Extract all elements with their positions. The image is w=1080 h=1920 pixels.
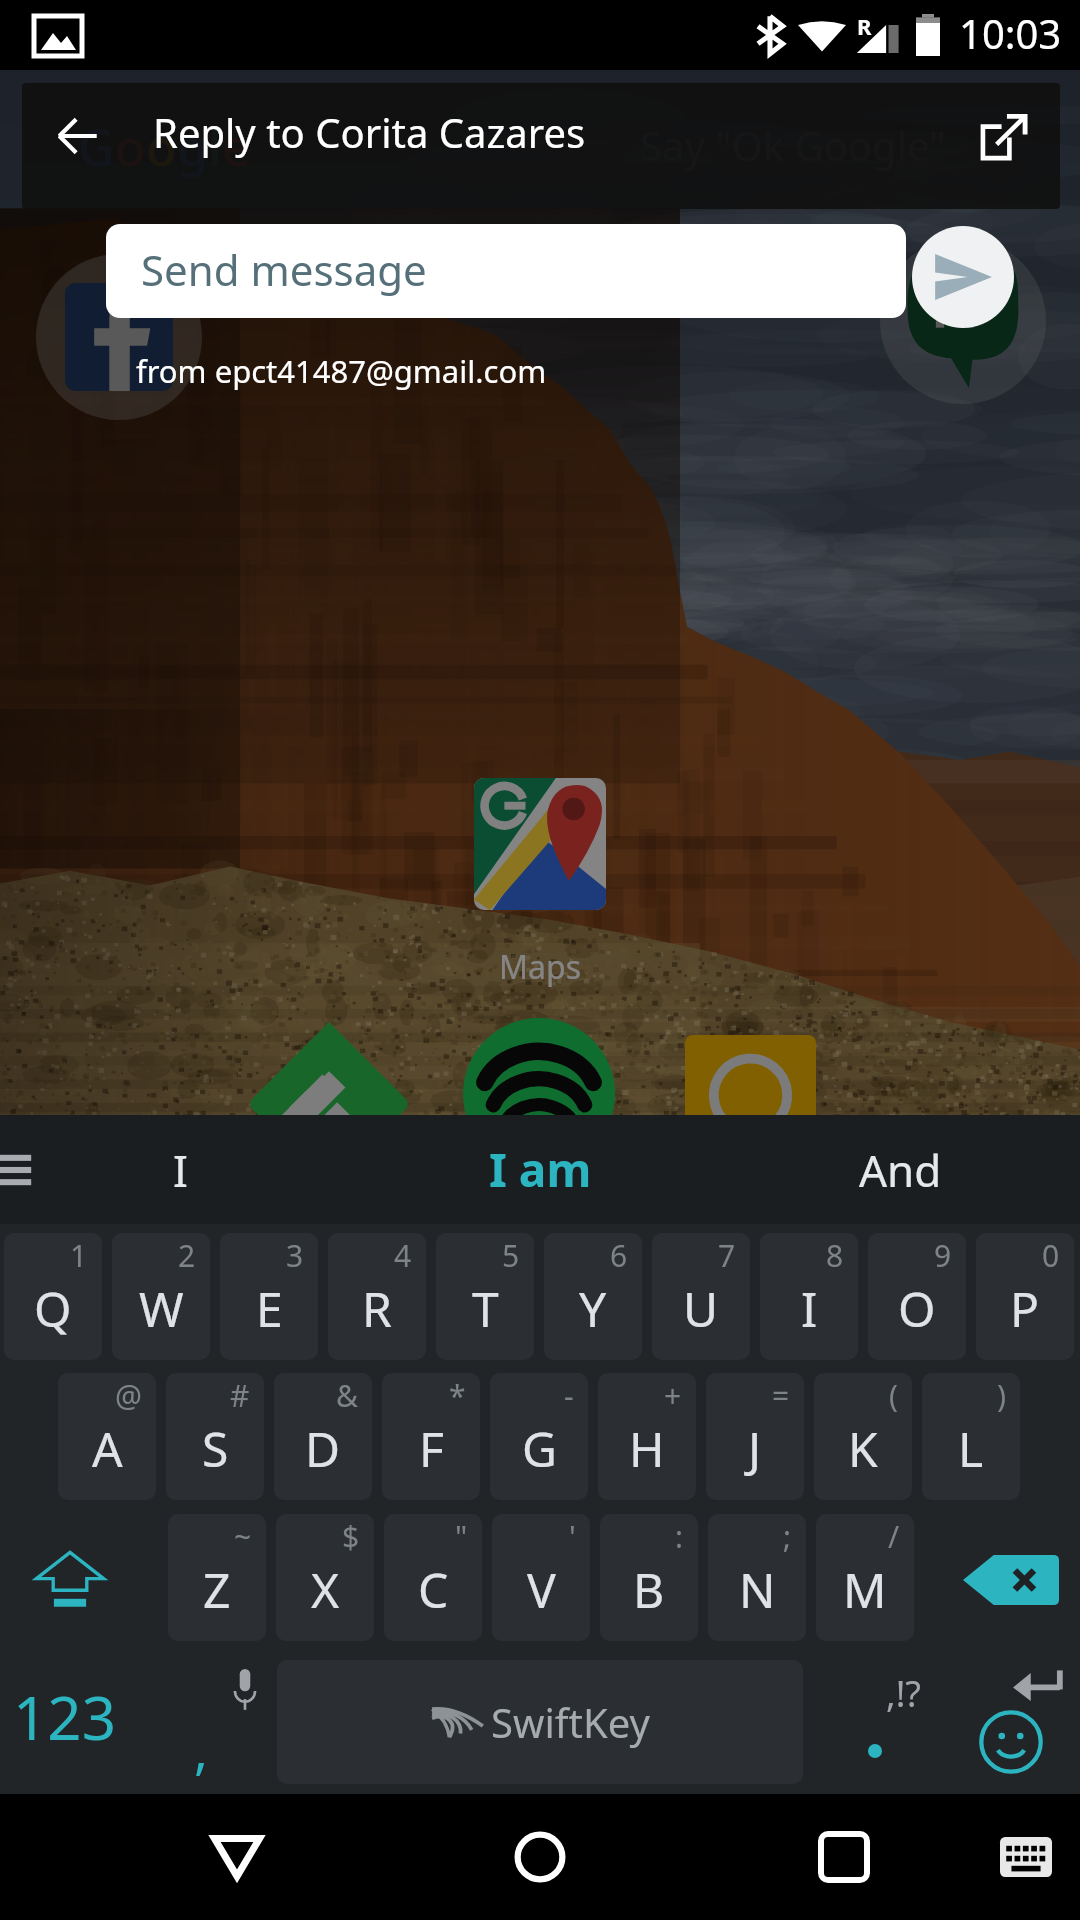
button[interactable]: Feedly bbox=[247, 1022, 411, 1186]
staticText: I bbox=[173, 1140, 188, 1200]
staticText: L bbox=[958, 1416, 984, 1481]
staticText: F bbox=[419, 1416, 444, 1481]
staticText: l bbox=[208, 113, 222, 181]
staticText: And bbox=[859, 1140, 942, 1200]
button[interactable]: 7 bbox=[652, 1233, 750, 1360]
button[interactable]: " bbox=[384, 1514, 482, 1641]
button[interactable]: Send message bbox=[106, 224, 906, 318]
staticText: # bbox=[230, 1375, 250, 1416]
staticText: E bbox=[256, 1276, 283, 1341]
staticText: 3 bbox=[286, 1235, 304, 1276]
staticText: W bbox=[139, 1276, 184, 1341]
staticText: * bbox=[449, 1375, 466, 1416]
button[interactable]: ) bbox=[922, 1373, 1020, 1500]
staticText: P bbox=[1010, 1276, 1040, 1341]
staticText: + bbox=[664, 1375, 682, 1416]
button[interactable]: ( bbox=[814, 1373, 912, 1500]
button[interactable]: ; bbox=[708, 1514, 806, 1641]
button[interactable]: = bbox=[706, 1373, 804, 1500]
staticText: ( bbox=[889, 1375, 898, 1416]
button[interactable]: Keep bbox=[685, 1035, 816, 1166]
button[interactable]: Shift bbox=[0, 1514, 168, 1646]
button[interactable]: / bbox=[816, 1514, 914, 1641]
button[interactable]: @ bbox=[58, 1373, 156, 1500]
staticText: ,!? bbox=[886, 1669, 921, 1718]
staticText: V bbox=[527, 1557, 556, 1622]
staticText: ; bbox=[783, 1516, 792, 1557]
staticText: from epct41487@gmail.com bbox=[136, 350, 547, 392]
button[interactable]: ~ bbox=[168, 1514, 266, 1641]
staticText: 2 bbox=[178, 1235, 196, 1276]
staticText: 123 bbox=[13, 1676, 116, 1758]
button[interactable]: : bbox=[600, 1514, 698, 1641]
button[interactable]: 8 bbox=[760, 1233, 858, 1360]
staticText: 8 bbox=[826, 1235, 844, 1276]
staticText: = bbox=[772, 1375, 790, 1416]
button[interactable]: Hangouts bbox=[880, 238, 1046, 404]
button[interactable]: ,!? bbox=[820, 1655, 950, 1789]
staticText: R bbox=[857, 11, 872, 41]
button[interactable]: * bbox=[382, 1373, 480, 1500]
button[interactable]: 9 bbox=[868, 1233, 966, 1360]
staticText: G bbox=[78, 113, 115, 181]
staticText: @ bbox=[115, 1375, 142, 1416]
staticText: / bbox=[888, 1516, 900, 1557]
staticText: " bbox=[455, 1516, 468, 1557]
staticText: 4 bbox=[394, 1235, 412, 1276]
button[interactable]: ' bbox=[492, 1514, 590, 1641]
button[interactable]: # bbox=[166, 1373, 264, 1500]
button[interactable]: Space bbox=[277, 1660, 803, 1784]
button[interactable]: $ bbox=[276, 1514, 374, 1641]
button[interactable]: 5 bbox=[436, 1233, 534, 1360]
staticText: J bbox=[748, 1416, 762, 1481]
staticText: Reply to Corita Cazares bbox=[153, 105, 586, 159]
staticText: 5 bbox=[502, 1235, 520, 1276]
button[interactable]: Hide keyboard bbox=[177, 1797, 297, 1917]
button[interactable]: Switch keyboard bbox=[976, 1807, 1076, 1907]
staticText: Y bbox=[579, 1276, 607, 1341]
button[interactable]: And bbox=[720, 1115, 1080, 1224]
staticText: D bbox=[305, 1416, 341, 1481]
button[interactable]: I am bbox=[360, 1115, 720, 1224]
button[interactable]: , bbox=[172, 1655, 278, 1789]
staticText: G bbox=[522, 1416, 557, 1481]
staticText: ) bbox=[997, 1375, 1006, 1416]
button[interactable]: Backspace bbox=[920, 1514, 1080, 1646]
staticText: B bbox=[633, 1557, 665, 1622]
button[interactable]: Enter bbox=[950, 1655, 1080, 1789]
button[interactable]: Home bbox=[480, 1797, 600, 1917]
button[interactable]: 2 bbox=[112, 1233, 210, 1360]
staticText: N bbox=[739, 1557, 776, 1622]
button[interactable]: Spotify bbox=[463, 1018, 615, 1170]
button[interactable]: Open in app bbox=[950, 83, 1058, 189]
staticText: I am bbox=[489, 1138, 592, 1201]
staticText: : bbox=[675, 1516, 684, 1557]
button[interactable]: + bbox=[598, 1373, 696, 1500]
button[interactable]: I bbox=[0, 1115, 360, 1224]
button[interactable]: Recents bbox=[784, 1797, 904, 1917]
staticText: ' bbox=[569, 1516, 576, 1557]
staticText: & bbox=[336, 1375, 358, 1416]
staticText: 1 bbox=[70, 1235, 88, 1276]
staticText: K bbox=[848, 1416, 878, 1481]
button[interactable]: 4 bbox=[328, 1233, 426, 1360]
button[interactable]: Back bbox=[22, 83, 132, 189]
button[interactable]: Maps bbox=[474, 778, 606, 910]
staticText: Maps bbox=[454, 945, 626, 989]
staticText: C bbox=[418, 1557, 449, 1622]
button[interactable]: 6 bbox=[544, 1233, 642, 1360]
staticText: ~ bbox=[234, 1516, 252, 1557]
button[interactable]: 123 bbox=[0, 1655, 172, 1789]
button[interactable]: 0 bbox=[976, 1233, 1074, 1360]
staticText: I bbox=[801, 1276, 818, 1341]
button[interactable]: Send bbox=[912, 226, 1014, 328]
button[interactable]: - bbox=[490, 1373, 588, 1500]
staticText: , bbox=[194, 1713, 208, 1784]
button[interactable]: 3 bbox=[220, 1233, 318, 1360]
button[interactable]: & bbox=[274, 1373, 372, 1500]
staticText: 0 bbox=[1042, 1235, 1060, 1276]
button[interactable]: Facebook bbox=[36, 254, 202, 420]
button[interactable]: 1 bbox=[4, 1233, 102, 1360]
staticText: T bbox=[472, 1276, 499, 1341]
